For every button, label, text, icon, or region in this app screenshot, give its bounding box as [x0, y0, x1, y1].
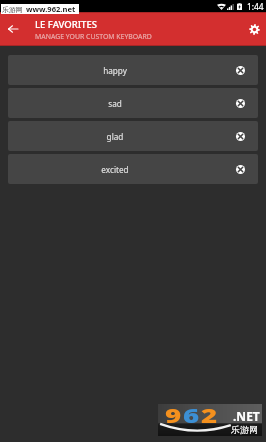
staticText: excited	[8, 164, 222, 175]
staticText: sad	[8, 98, 222, 109]
button[interactable]: Back	[3, 19, 23, 39]
button[interactable]: Remove happy	[222, 55, 258, 85]
staticText: 1:44	[247, 1, 264, 12]
button[interactable]: happy	[8, 55, 258, 85]
staticText: glad	[8, 131, 222, 142]
staticText: 6	[183, 402, 201, 429]
button[interactable]: excited	[8, 154, 258, 184]
staticText: MANAGE YOUR CUSTOM KEYBOARD	[35, 32, 152, 41]
staticText: www.962.net	[26, 4, 76, 14]
staticText: happy	[8, 65, 222, 76]
button[interactable]: Remove glad	[222, 121, 258, 151]
staticText: LE FAVORITES	[35, 18, 97, 31]
button[interactable]: glad	[8, 121, 258, 151]
button[interactable]: sad	[8, 88, 258, 118]
staticText: .NET	[233, 408, 260, 424]
staticText: 乐游网	[2, 5, 23, 14]
staticText: 9	[165, 402, 183, 429]
staticText: 2	[201, 402, 219, 429]
button[interactable]: Remove sad	[222, 88, 258, 118]
staticText: 乐游网	[231, 424, 258, 435]
button[interactable]: Settings	[245, 20, 263, 38]
button[interactable]: Remove excited	[222, 154, 258, 184]
